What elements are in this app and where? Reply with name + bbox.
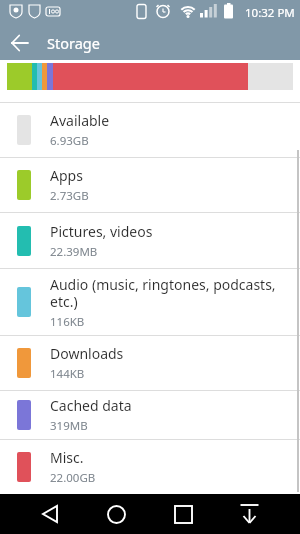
staticText: Cached data (50, 396, 132, 415)
staticText: 6.93GB (50, 133, 89, 149)
button[interactable]: Audio (music, ringtones, podcasts, etc.) (0, 268, 300, 335)
button[interactable] (0, 25, 40, 60)
staticText: 116KB (50, 314, 85, 330)
button[interactable] (30, 494, 70, 534)
staticText: Available (50, 111, 110, 130)
staticText: 10:32 PM (245, 5, 295, 21)
staticText: Pictures, videos (50, 222, 153, 241)
staticText: 319MB (50, 418, 88, 434)
staticText: 22.00GB (50, 470, 96, 486)
staticText: Downloads (50, 344, 124, 363)
button[interactable]: Cached data (0, 390, 300, 439)
button[interactable]: Available (0, 102, 300, 157)
button[interactable] (163, 494, 203, 534)
button[interactable]: Pictures, videos (0, 212, 300, 268)
staticText: Storage (47, 33, 100, 53)
button[interactable] (96, 494, 136, 534)
button[interactable]: Downloads (0, 335, 300, 390)
staticText: 2.73GB (50, 188, 89, 204)
staticText: 144KB (50, 366, 85, 382)
staticText: Misc. (50, 448, 84, 467)
staticText: 22.39MB (50, 244, 98, 260)
button[interactable]: Apps (0, 157, 300, 212)
button[interactable] (229, 494, 269, 534)
button[interactable]: Misc. (0, 439, 300, 494)
staticText: Apps (50, 166, 83, 185)
staticText: Audio (music, ringtones, podcasts, etc.) (50, 275, 276, 311)
